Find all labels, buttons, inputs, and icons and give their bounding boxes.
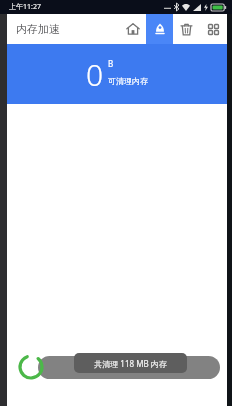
- button[interactable]: Clean: [173, 14, 200, 44]
- button[interactable]: Boost: [146, 14, 173, 44]
- button[interactable]: Scanning: [17, 353, 45, 381]
- staticText: 上午11:27: [9, 2, 41, 12]
- staticText: 内存加速: [16, 22, 60, 36]
- button[interactable]: [38, 356, 220, 379]
- button[interactable]: Home: [119, 14, 146, 44]
- staticText: 0: [86, 54, 104, 95]
- staticText: 共清理 118 MB 内存: [94, 358, 167, 369]
- staticText: 可清理内存: [108, 76, 148, 86]
- button[interactable]: Apps: [200, 14, 227, 44]
- staticText: B: [108, 58, 114, 69]
